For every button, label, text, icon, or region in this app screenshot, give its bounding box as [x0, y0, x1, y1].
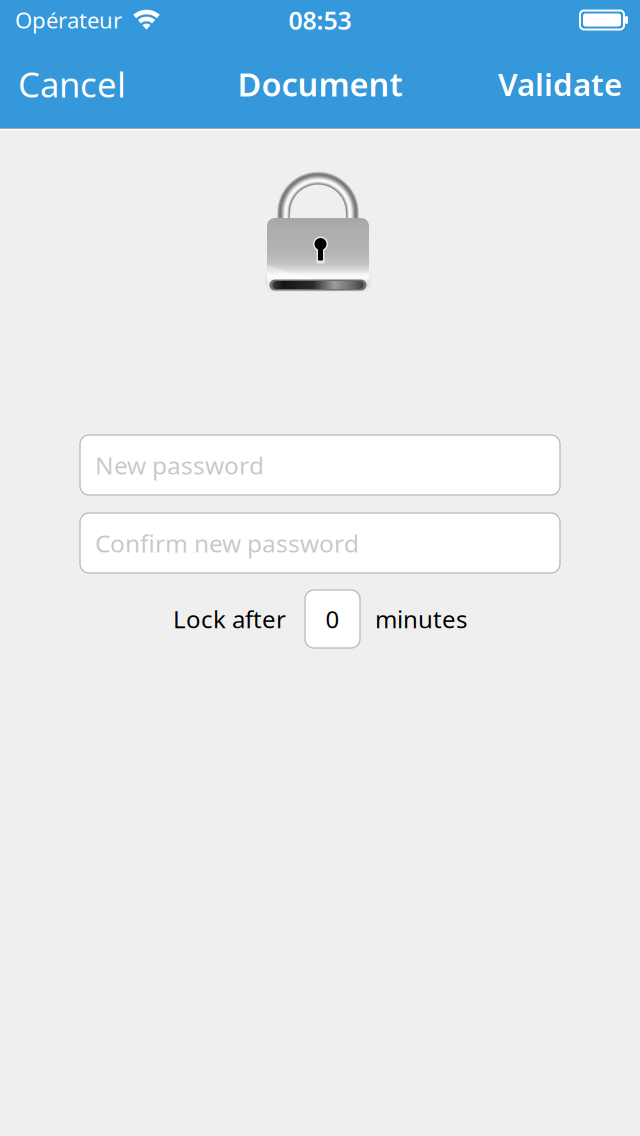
staticText: Opérateur	[15, 5, 122, 35]
button[interactable]: 0	[305, 590, 360, 648]
staticText: 08:53	[288, 3, 351, 37]
staticText: Confirm new password	[95, 526, 359, 560]
button[interactable]: Confirm new password	[80, 513, 560, 573]
staticText: Cancel	[18, 60, 126, 108]
button[interactable]: New password	[80, 435, 560, 495]
staticText: minutes	[375, 603, 467, 635]
staticText: 0	[325, 603, 339, 635]
button[interactable]: Validate	[480, 40, 640, 128]
button[interactable]: Cancel	[0, 40, 144, 128]
staticText: New password	[95, 448, 264, 482]
staticText: Validate	[498, 63, 622, 105]
staticText: Document	[237, 62, 402, 106]
staticText: Lock after	[173, 603, 286, 635]
